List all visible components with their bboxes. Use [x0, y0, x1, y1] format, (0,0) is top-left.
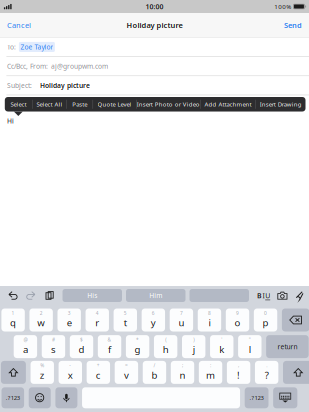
- button[interactable]: His: [62, 289, 122, 302]
- button[interactable]: ): [182, 335, 205, 358]
- staticText: y: [151, 316, 156, 329]
- button[interactable]: Cc/Bcc, From:: [0, 57, 309, 75]
- staticText: return: [277, 342, 297, 351]
- button[interactable]: Select: [4, 97, 32, 111]
- button[interactable]: Insert Drawing: [256, 97, 306, 111]
- button[interactable]: Him: [126, 289, 185, 302]
- staticText: U: [265, 291, 270, 300]
- button[interactable]: .?123: [1, 387, 24, 408]
- button[interactable]: Shift: [1, 361, 26, 384]
- staticText: 9: [236, 310, 239, 316]
- button[interactable]: Attach file: [295, 291, 304, 300]
- button[interactable]: %: [31, 361, 54, 384]
- staticText: Insert Drawing: [260, 100, 302, 108]
- staticText: I: [263, 291, 265, 300]
- button[interactable]: 2: [29, 308, 53, 331]
- staticText: Send: [284, 20, 302, 30]
- staticText: %: [40, 362, 44, 369]
- button[interactable]: #: [42, 335, 65, 358]
- staticText: Cancel: [7, 20, 31, 30]
- button[interactable]: 1: [1, 308, 25, 331]
- staticText: f: [108, 343, 111, 356]
- button[interactable]: 8: [198, 308, 221, 331]
- button[interactable]: 7: [170, 308, 193, 331]
- button[interactable]: ;: [171, 361, 194, 384]
- button[interactable]: .?123: [245, 387, 268, 408]
- button[interactable]: 9: [226, 308, 249, 331]
- staticText: ': [221, 336, 222, 343]
- button[interactable]: 0: [254, 308, 277, 331]
- staticText: q: [10, 316, 16, 329]
- button[interactable]: Paste: [45, 291, 54, 300]
- button[interactable]: $: [70, 335, 93, 358]
- staticText: g: [135, 343, 141, 356]
- staticText: To:: [7, 42, 16, 51]
- staticText: 3: [68, 310, 71, 316]
- button[interactable]: /: [143, 361, 166, 384]
- button[interactable]: Undo: [8, 291, 17, 300]
- button[interactable]: @: [14, 335, 37, 358]
- button[interactable]: Send: [276, 15, 309, 35]
- staticText: His: [87, 291, 97, 300]
- staticText: i: [208, 316, 210, 329]
- staticText: (: [165, 336, 166, 343]
- button[interactable]: ,: [227, 361, 250, 384]
- staticText: 8: [208, 310, 211, 316]
- button[interactable]: Dictation: [55, 387, 77, 408]
- button[interactable]: Add Attachment: [201, 97, 255, 111]
- staticText: Subject:: [7, 81, 32, 90]
- button[interactable]: 5: [114, 308, 137, 331]
- button[interactable]: Backspace: [282, 308, 309, 331]
- button[interactable]: 3: [57, 308, 81, 331]
- button[interactable]: Emoji: [29, 387, 51, 408]
- button[interactable]: ': [210, 335, 233, 358]
- button[interactable]: +: [87, 361, 110, 384]
- button[interactable]: 4: [85, 308, 109, 331]
- button[interactable]: Hide Keyboard: [273, 387, 297, 408]
- button[interactable]: Select All: [33, 97, 66, 111]
- button[interactable]: .: [255, 361, 278, 384]
- staticText: p: [263, 316, 269, 329]
- staticText: 1: [12, 310, 15, 316]
- button[interactable]: Insert photo: [277, 291, 288, 300]
- staticText: h: [163, 343, 169, 356]
- button[interactable]: :: [199, 361, 222, 384]
- button[interactable]: Insert Photo or Video: [137, 97, 200, 111]
- button[interactable]: Shift: [283, 361, 309, 384]
- staticText: ": [249, 336, 251, 343]
- staticText: 2: [40, 310, 43, 316]
- button[interactable]: Paste: [67, 97, 93, 111]
- button[interactable]: 6: [142, 308, 165, 331]
- staticText: +: [97, 362, 100, 369]
- staticText: *: [136, 336, 139, 343]
- button[interactable]: &: [98, 335, 121, 358]
- button[interactable]: =: [115, 361, 138, 384]
- staticText: e: [67, 316, 72, 329]
- button[interactable]: (: [154, 335, 177, 358]
- staticText: Him: [149, 291, 162, 300]
- staticText: s: [51, 343, 56, 356]
- button[interactable]: To:: [0, 38, 309, 56]
- staticText: =: [125, 362, 128, 369]
- button[interactable]: Redo: [26, 291, 36, 300]
- staticText: .?123: [6, 394, 20, 402]
- staticText: !: [237, 368, 240, 382]
- button[interactable]: return: [266, 335, 309, 358]
- staticText: 6: [152, 310, 155, 316]
- button[interactable]: Quote Level: [93, 97, 136, 111]
- staticText: z: [40, 368, 45, 382]
- staticText: Quote Level: [97, 100, 131, 108]
- button[interactable]: ": [238, 335, 261, 358]
- button[interactable]: -: [59, 361, 82, 384]
- staticText: Select: [10, 100, 26, 108]
- staticText: k: [219, 343, 224, 356]
- staticText: .?123: [250, 394, 264, 402]
- button[interactable]: Subject:: [0, 76, 309, 95]
- staticText: ): [193, 336, 194, 343]
- button[interactable]: Space: [82, 387, 240, 408]
- button[interactable]: Text formatting: [257, 291, 270, 300]
- button[interactable]: Cancel: [0, 15, 39, 35]
- button[interactable]: *: [126, 335, 149, 358]
- staticText: aj@groupwm.com: [51, 62, 108, 71]
